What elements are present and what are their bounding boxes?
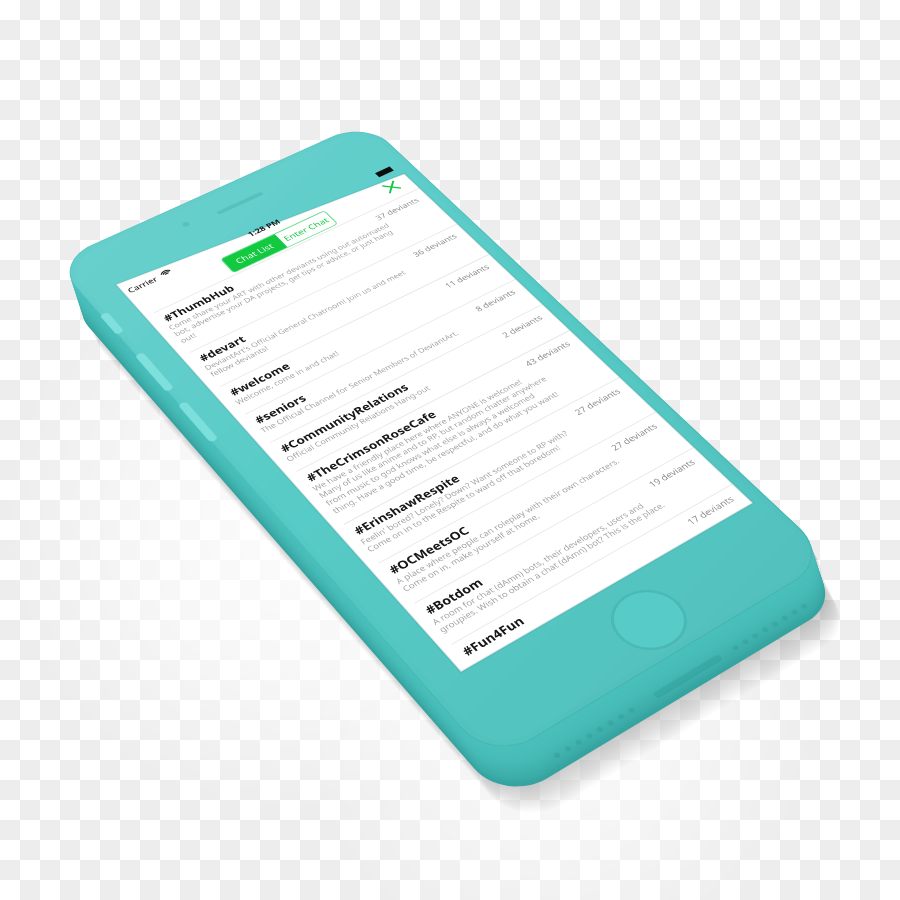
- button[interactable]: #TheCrimsonRoseCafe chat room: [287, 330, 620, 529]
- button[interactable]: #ThumbHub chat room: [145, 188, 457, 357]
- button[interactable]: #ErinshawRespite chat room: [334, 377, 656, 568]
- button[interactable]: Enter Chat tab: [275, 211, 338, 247]
- button[interactable]: #welcome chat room: [211, 254, 516, 419]
- button[interactable]: Chat List tab: [221, 234, 288, 273]
- button[interactable]: Home button: [596, 578, 703, 662]
- button[interactable]: #CommunityRelations chat room: [261, 304, 570, 476]
- button[interactable]: #OCMeetsOC chat room: [369, 412, 694, 609]
- button[interactable]: #seniors chat room: [236, 279, 543, 447]
- button[interactable]: #devart chat room: [180, 224, 489, 391]
- button[interactable]: #Fun4Fun chat room: [442, 484, 757, 676]
- other: Chat rooms list on phone mockup: [0, 0, 900, 900]
- button[interactable]: Close: [376, 176, 409, 198]
- button[interactable]: #Botdom chat room: [405, 447, 733, 650]
